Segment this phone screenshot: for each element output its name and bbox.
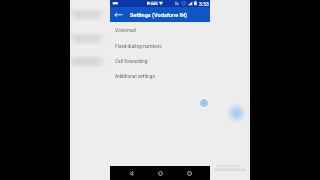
button[interactable]: Voicemail bbox=[110, 23, 210, 38]
button[interactable]: Navigate up bbox=[110, 7, 126, 22]
staticText: Settings (Vodafone IN) bbox=[130, 12, 188, 19]
staticText: 3:53 bbox=[199, 1, 209, 7]
staticText: Voicemail bbox=[115, 28, 137, 34]
button[interactable]: Recent apps bbox=[181, 166, 197, 180]
staticText: Additional settings bbox=[115, 74, 155, 80]
button[interactable]: Fixed dialing numbers bbox=[110, 39, 210, 54]
button[interactable]: Back bbox=[123, 166, 139, 180]
staticText: Fixed dialing numbers bbox=[115, 44, 162, 50]
staticText: Call forwarding bbox=[115, 59, 148, 65]
button[interactable]: Additional settings bbox=[110, 69, 210, 84]
button[interactable]: Call forwarding bbox=[110, 54, 210, 69]
button[interactable]: Home bbox=[152, 166, 168, 180]
